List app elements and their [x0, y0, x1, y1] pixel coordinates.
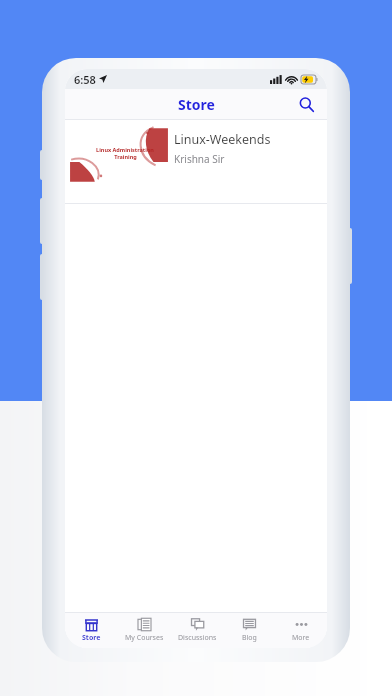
staticText: 6:58: [74, 72, 96, 87]
staticText: Linux-Weekends: [174, 131, 271, 148]
staticText: Krishna Sir: [174, 152, 225, 166]
staticText: My Courses: [125, 633, 164, 643]
button[interactable]: My Courses: [118, 613, 171, 648]
button[interactable]: More: [275, 613, 327, 648]
staticText: Training: [114, 153, 137, 160]
staticText: More: [292, 633, 310, 643]
staticText: Linux Administration: [96, 146, 154, 153]
button[interactable]: Blog: [223, 613, 275, 648]
button[interactable]: Discussions: [171, 613, 223, 648]
staticText: Store: [178, 95, 215, 114]
staticText: Blog: [242, 633, 257, 643]
button[interactable]: Search: [293, 91, 319, 117]
button[interactable]: Store: [65, 613, 118, 648]
staticText: Store: [82, 633, 101, 643]
button[interactable]: Linux Administration: [65, 120, 327, 203]
staticText: Discussions: [178, 633, 217, 643]
